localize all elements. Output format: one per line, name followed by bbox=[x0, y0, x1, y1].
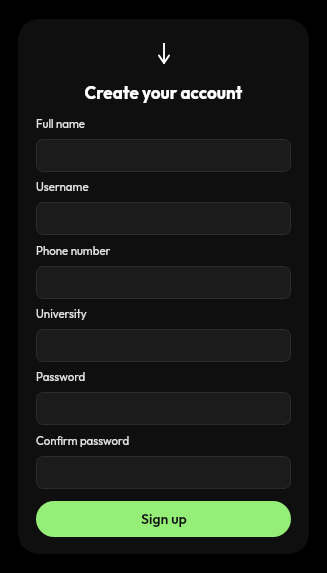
button[interactable] bbox=[36, 139, 291, 172]
staticText: Username bbox=[36, 179, 89, 193]
button[interactable] bbox=[36, 392, 291, 425]
button[interactable] bbox=[36, 329, 291, 362]
staticText: University bbox=[36, 306, 87, 320]
button[interactable] bbox=[36, 266, 291, 299]
button[interactable] bbox=[36, 456, 291, 489]
button[interactable]: Scroll down bbox=[154, 43, 174, 63]
staticText: Create your account bbox=[18, 82, 309, 103]
staticText: Phone number bbox=[36, 243, 111, 257]
button[interactable] bbox=[36, 202, 291, 235]
button[interactable]: Sign up bbox=[36, 501, 291, 537]
staticText: Password bbox=[36, 369, 86, 383]
staticText: Confirm password bbox=[36, 433, 130, 447]
staticText: Full name bbox=[36, 116, 85, 130]
staticText: Sign up bbox=[141, 510, 187, 528]
